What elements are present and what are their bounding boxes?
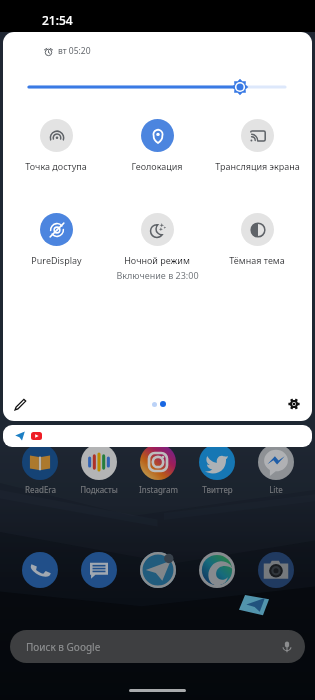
button[interactable]: Точка доступа — [6, 119, 106, 172]
staticText: PureDisplay — [31, 254, 82, 266]
button[interactable]: Ночной режим — [107, 213, 207, 281]
staticText: вт 05:20 — [58, 45, 91, 57]
button[interactable]: Telegram chat head — [238, 592, 270, 616]
staticText: Твиттер — [202, 484, 233, 495]
button[interactable]: Edit tiles — [6, 390, 34, 418]
button[interactable] — [188, 552, 246, 588]
button[interactable]: Instagram — [129, 444, 187, 495]
button[interactable] — [11, 552, 69, 588]
button[interactable]: Твиттер — [188, 444, 246, 495]
button[interactable]: Lite — [247, 444, 305, 495]
button[interactable]: ReadEra — [11, 444, 69, 495]
staticText: Геолокация — [131, 160, 183, 172]
button[interactable]: Трансляция экрана — [207, 119, 307, 172]
button[interactable]: Геолокация — [107, 119, 207, 172]
button[interactable] — [70, 552, 128, 588]
button[interactable] — [129, 552, 187, 588]
staticText: Точка доступа — [25, 160, 87, 172]
button[interactable]: PureDisplay — [6, 213, 106, 266]
staticText: Подкасты — [80, 484, 118, 495]
button[interactable]: Подкасты — [70, 444, 128, 495]
staticText: Ночной режим — [124, 254, 190, 266]
button[interactable] — [247, 552, 305, 588]
staticText: 21:54 — [42, 12, 73, 28]
staticText: Трансляция экрана — [215, 160, 300, 172]
staticText: Тёмная тема — [229, 254, 285, 266]
staticText: Включение в 23:00 — [116, 269, 199, 281]
button[interactable]: Поиск в Google — [10, 630, 305, 663]
staticText: Lite — [269, 484, 283, 495]
staticText: ReadEra — [25, 484, 56, 495]
staticText: Instagram — [139, 484, 178, 495]
button[interactable]: Settings — [280, 390, 308, 418]
button[interactable]: Тёмная тема — [207, 213, 307, 266]
staticText: Поиск в Google — [26, 640, 101, 654]
